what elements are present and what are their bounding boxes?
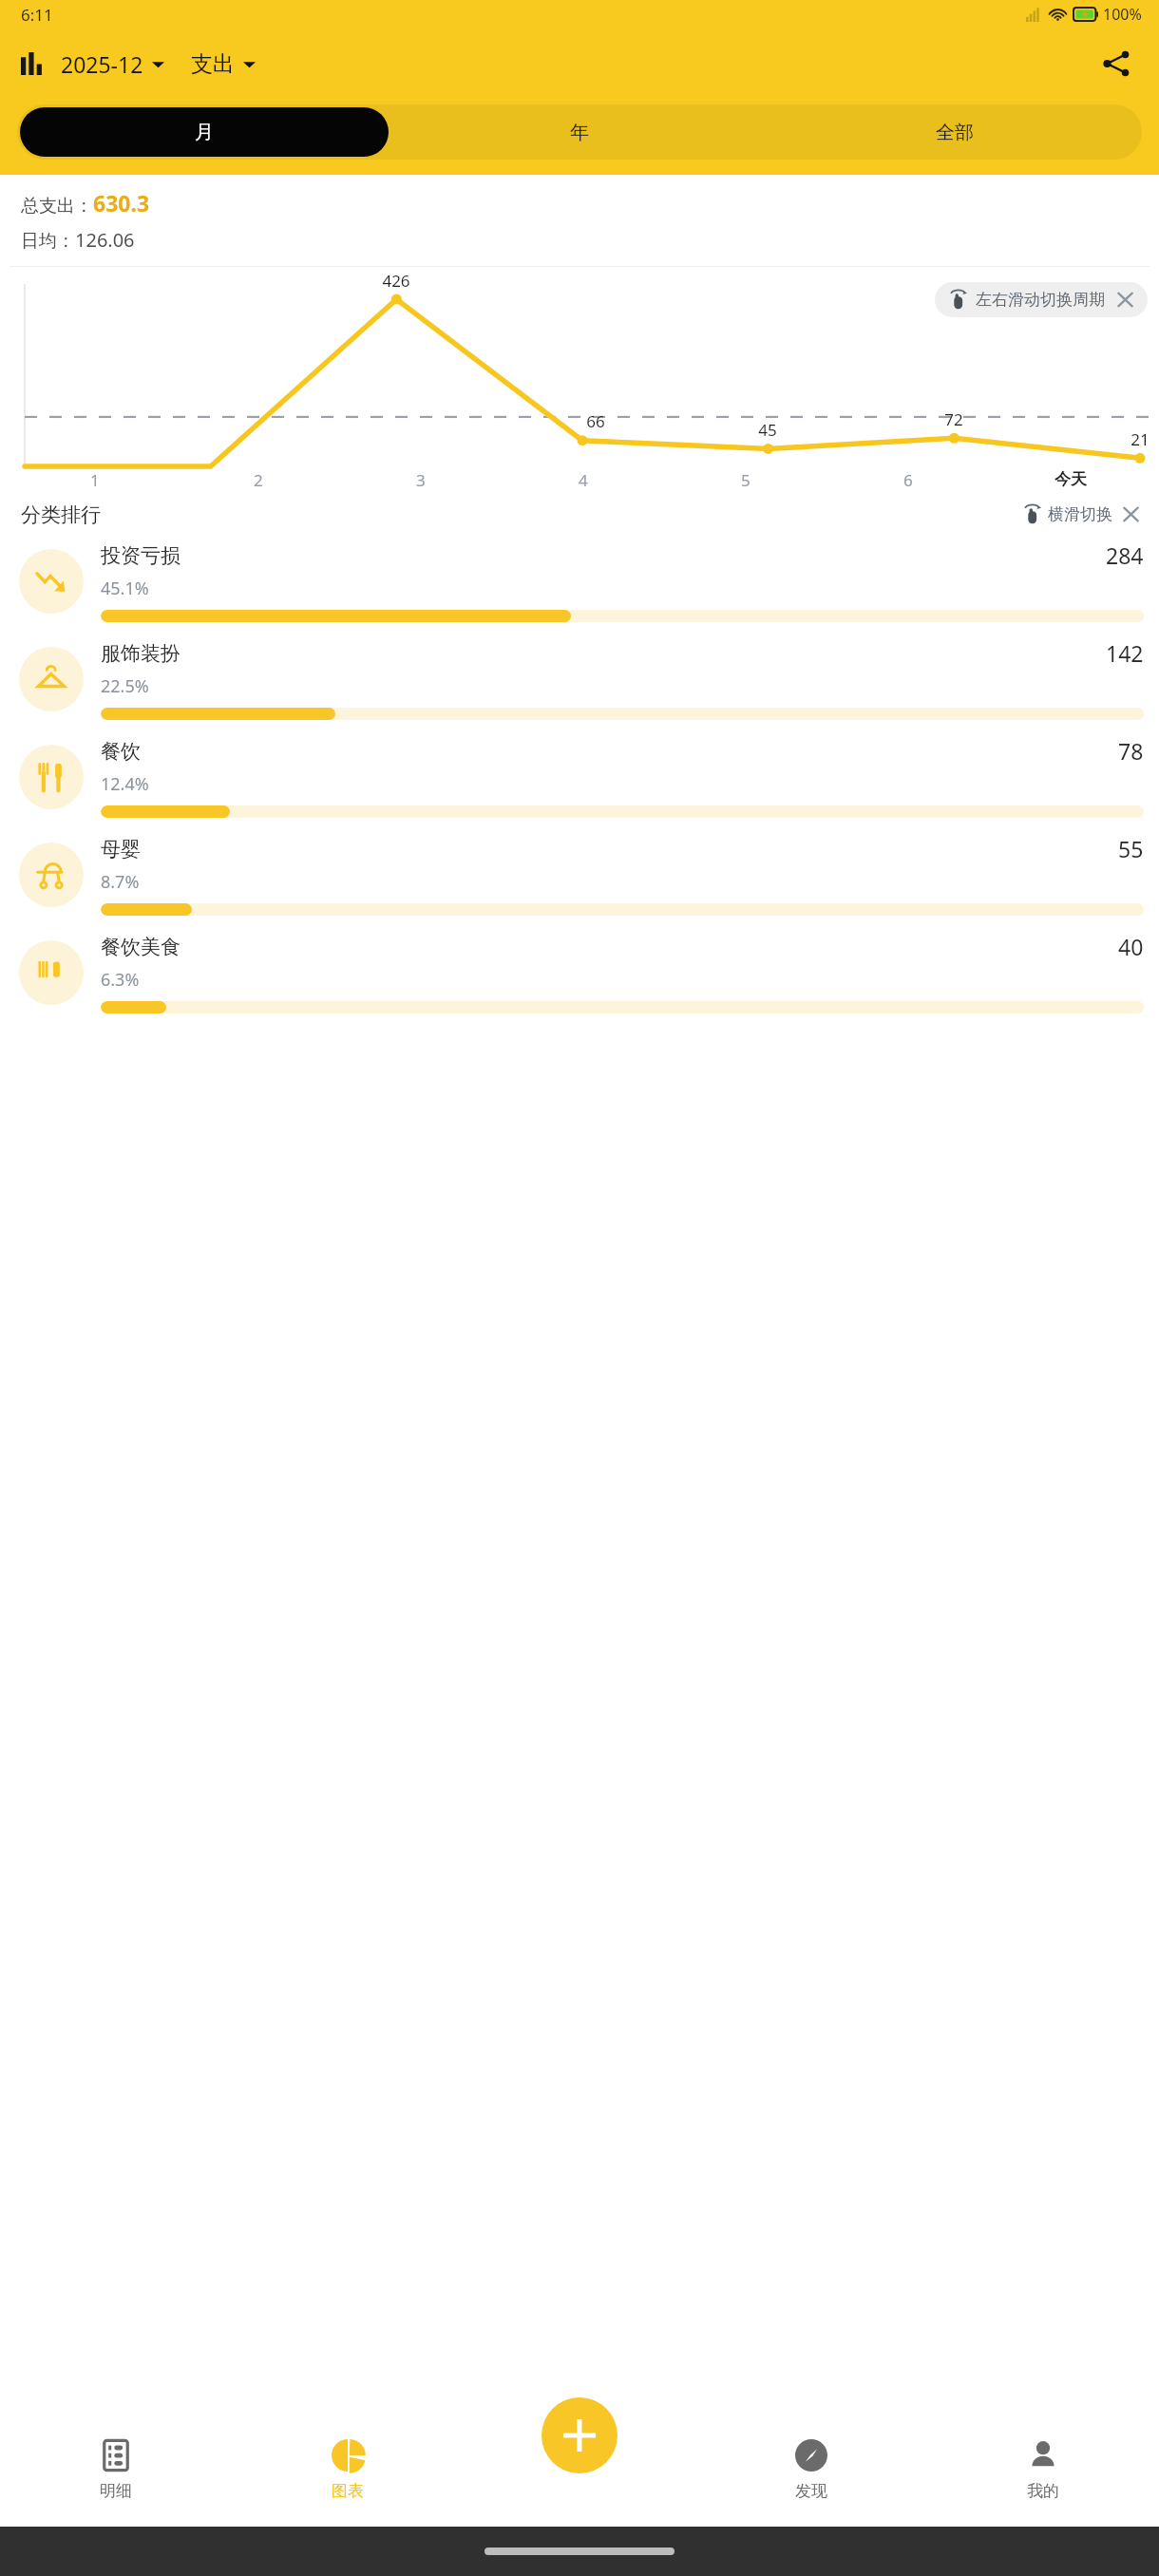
- staticText: 左右滑动切换周期: [976, 290, 1105, 310]
- staticText: 分类排行: [21, 502, 101, 527]
- staticText: 日均：: [21, 230, 75, 253]
- button[interactable]: 餐饮: [0, 728, 1159, 825]
- staticText: 426: [382, 270, 410, 292]
- staticText: 母婴: [101, 837, 141, 862]
- button[interactable]: 投资亏损: [0, 532, 1159, 630]
- button[interactable]: 餐饮美食: [0, 923, 1159, 1021]
- button[interactable]: 图表: [232, 2413, 464, 2527]
- staticText: 45.1%: [101, 577, 149, 600]
- staticText: 月: [195, 121, 214, 144]
- staticText: 22.5%: [101, 674, 149, 698]
- staticText: 126.06: [75, 227, 135, 253]
- staticText: 6.3%: [101, 968, 140, 992]
- button[interactable]: 月: [20, 107, 389, 157]
- staticText: 全部: [936, 121, 974, 144]
- staticText: 45: [758, 419, 777, 441]
- staticText: 284: [1106, 540, 1144, 570]
- staticText: 12.4%: [101, 772, 149, 796]
- staticText: 今天: [1054, 469, 1087, 489]
- staticText: 明细: [100, 2481, 132, 2501]
- staticText: 5: [741, 469, 750, 491]
- staticText: 发现: [795, 2481, 827, 2501]
- staticText: 1: [90, 469, 100, 491]
- button[interactable]: 母婴: [0, 825, 1159, 923]
- staticText: 4: [579, 469, 588, 491]
- button[interactable]: 2025-12: [61, 49, 164, 79]
- staticText: 40: [1118, 932, 1144, 961]
- staticText: 总支出：: [21, 195, 93, 218]
- staticText: 2: [254, 469, 263, 491]
- staticText: 55: [1118, 834, 1144, 863]
- button[interactable]: 左右滑动切换周期: [935, 282, 1148, 317]
- button[interactable]: 明细: [0, 2413, 232, 2527]
- staticText: 66: [586, 410, 605, 432]
- staticText: 图表: [332, 2481, 364, 2501]
- button[interactable]: 发现: [695, 2413, 927, 2527]
- staticText: 8.7%: [101, 870, 140, 894]
- button[interactable]: 横滑切换: [1018, 501, 1144, 528]
- staticText: 6: [903, 469, 913, 491]
- staticText: 我的: [1027, 2481, 1059, 2501]
- staticText: 服饰装扮: [101, 641, 180, 666]
- staticText: 6:11: [21, 4, 53, 26]
- staticText: 支出: [191, 50, 235, 78]
- staticText: 630.3: [93, 188, 150, 218]
- button[interactable]: 年: [391, 104, 767, 160]
- staticText: 横滑切换: [1048, 504, 1112, 524]
- staticText: 年: [570, 121, 589, 144]
- button[interactable]: 支出: [191, 50, 256, 78]
- staticText: 投资亏损: [101, 543, 180, 568]
- staticText: 2025-12: [61, 49, 143, 79]
- staticText: 餐饮美食: [101, 935, 180, 959]
- button[interactable]: 全部: [767, 104, 1142, 160]
- button[interactable]: Share: [1094, 42, 1138, 85]
- staticText: 3: [416, 469, 426, 491]
- button[interactable]: Add record: [541, 2397, 617, 2473]
- staticText: 78: [1118, 736, 1144, 766]
- button[interactable]: 服饰装扮: [0, 630, 1159, 728]
- staticText: 餐饮: [101, 739, 141, 764]
- button[interactable]: 我的: [927, 2413, 1159, 2527]
- staticText: 100%: [1103, 4, 1142, 25]
- staticText: 142: [1106, 638, 1144, 668]
- staticText: 21: [1130, 428, 1149, 450]
- staticText: 72: [944, 408, 963, 430]
